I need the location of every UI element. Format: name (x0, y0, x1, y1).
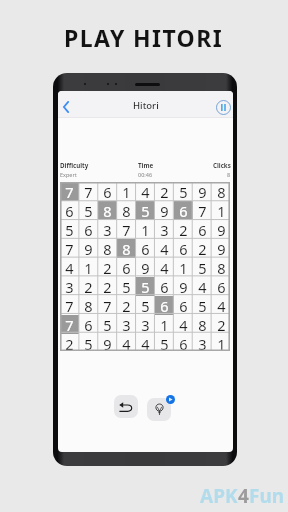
button[interactable]: 9 (98, 334, 117, 351)
button[interactable]: 5 (193, 258, 212, 277)
staticText: 7 (65, 239, 74, 258)
button[interactable]: 9 (212, 220, 230, 239)
button[interactable]: 5 (155, 334, 174, 351)
button[interactable]: 5 (60, 220, 79, 239)
staticText: 5 (198, 258, 207, 277)
staticText: APK (200, 483, 238, 509)
button[interactable]: 3 (117, 315, 136, 334)
button[interactable]: 9 (155, 201, 174, 220)
button[interactable]: 4 (136, 182, 155, 201)
button[interactable]: 7 (98, 296, 117, 315)
button[interactable]: 4 (117, 334, 136, 351)
button[interactable]: 7 (193, 201, 212, 220)
button[interactable]: 5 (136, 277, 155, 296)
button[interactable]: 2 (98, 258, 117, 277)
button[interactable]: 1 (117, 182, 136, 201)
button[interactable]: 6 (174, 296, 193, 315)
button[interactable]: 6 (174, 239, 193, 258)
button[interactable]: Back (59, 99, 73, 115)
button[interactable]: 2 (155, 182, 174, 201)
button[interactable]: 1 (79, 258, 98, 277)
button[interactable]: 6 (79, 220, 98, 239)
button[interactable]: 5 (79, 334, 98, 351)
button[interactable]: 5 (174, 182, 193, 201)
button[interactable]: 6 (155, 296, 174, 315)
button[interactable]: Watch ad for hint (166, 395, 175, 404)
staticText: 00:46 (138, 171, 153, 178)
button[interactable]: 5 (136, 201, 155, 220)
button[interactable]: 7 (79, 182, 98, 201)
button[interactable]: 9 (136, 258, 155, 277)
button[interactable]: 2 (79, 277, 98, 296)
button[interactable]: 4 (136, 334, 155, 351)
button[interactable]: 9 (79, 239, 98, 258)
button[interactable]: 7 (60, 182, 79, 201)
button[interactable]: 8 (117, 239, 136, 258)
button[interactable]: 5 (98, 315, 117, 334)
staticText: 8 (198, 315, 207, 334)
button[interactable]: 6 (212, 277, 230, 296)
button[interactable]: 8 (193, 315, 212, 334)
button[interactable]: 4 (212, 296, 230, 315)
button[interactable]: 6 (155, 277, 174, 296)
button[interactable]: 4 (60, 258, 79, 277)
button[interactable]: 9 (212, 239, 230, 258)
button[interactable]: 2 (212, 315, 230, 334)
button[interactable]: 1 (136, 220, 155, 239)
button[interactable]: 6 (136, 239, 155, 258)
button[interactable]: 1 (212, 334, 230, 351)
button[interactable]: 1 (174, 258, 193, 277)
staticText: 5 (141, 296, 150, 315)
button[interactable]: 4 (193, 277, 212, 296)
button[interactable]: 3 (193, 334, 212, 351)
button[interactable]: 8 (98, 201, 117, 220)
button[interactable]: 2 (117, 296, 136, 315)
button[interactable]: 6 (117, 258, 136, 277)
button[interactable]: 8 (79, 296, 98, 315)
button[interactable]: 2 (60, 334, 79, 351)
button[interactable]: 8 (117, 201, 136, 220)
button[interactable]: 4 (155, 258, 174, 277)
button[interactable]: 7 (60, 239, 79, 258)
button[interactable]: 5 (193, 296, 212, 315)
button[interactable]: 6 (79, 315, 98, 334)
button[interactable]: 2 (98, 277, 117, 296)
button[interactable]: 6 (174, 201, 193, 220)
button[interactable]: 3 (98, 220, 117, 239)
button[interactable]: 8 (212, 258, 230, 277)
button[interactable]: 1 (155, 315, 174, 334)
staticText: 6 (141, 239, 150, 258)
button[interactable]: 5 (79, 201, 98, 220)
button[interactable]: 4 (174, 315, 193, 334)
staticText: 2 (198, 239, 207, 258)
button[interactable]: 6 (193, 220, 212, 239)
button[interactable]: 3 (60, 277, 79, 296)
staticText: 5 (122, 277, 131, 296)
button[interactable]: 2 (193, 239, 212, 258)
button[interactable]: 9 (174, 277, 193, 296)
button[interactable]: Hint (147, 398, 171, 421)
button[interactable]: 6 (60, 201, 79, 220)
button[interactable]: Undo (114, 395, 138, 418)
button[interactable]: 8 (98, 239, 117, 258)
button[interactable]: 6 (98, 182, 117, 201)
button[interactable]: 7 (117, 220, 136, 239)
button[interactable]: 7 (60, 315, 79, 334)
button[interactable]: 3 (136, 315, 155, 334)
button[interactable]: 4 (155, 239, 174, 258)
button[interactable]: 8 (212, 182, 230, 201)
staticText: 7 (65, 315, 74, 334)
staticText: 9 (179, 277, 188, 296)
button[interactable]: 1 (212, 201, 230, 220)
staticText: 9 (141, 258, 150, 277)
button[interactable]: 6 (174, 334, 193, 351)
button[interactable]: 5 (117, 277, 136, 296)
button[interactable]: 5 (136, 296, 155, 315)
button[interactable]: Pause (215, 99, 231, 115)
staticText: 1 (141, 220, 150, 239)
button[interactable]: 2 (174, 220, 193, 239)
button[interactable]: 7 (60, 296, 79, 315)
button[interactable]: 3 (155, 220, 174, 239)
button[interactable]: 9 (193, 182, 212, 201)
staticText: Difficulty (60, 161, 89, 169)
